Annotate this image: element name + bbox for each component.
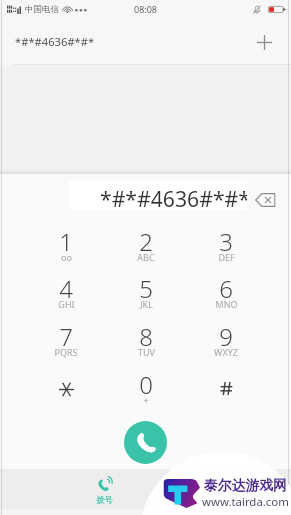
button[interactable]: 2 (106, 224, 186, 271)
button[interactable]: 拨号 (68, 469, 140, 509)
staticText: JKL (140, 298, 153, 310)
button[interactable]: 收藏 (212, 469, 284, 509)
staticText: 3 (219, 225, 233, 258)
staticText: 5 (139, 272, 153, 305)
staticText: 中国电信 (25, 4, 59, 15)
staticText: 08:08 (134, 3, 158, 15)
staticText: 8 (139, 320, 153, 353)
staticText: ABC (137, 251, 155, 263)
staticText: 7 (59, 320, 73, 353)
button[interactable]: 4 (26, 271, 106, 318)
staticText: 1 (59, 225, 73, 258)
button[interactable] (26, 367, 106, 414)
staticText: 4 (59, 272, 73, 305)
staticText: www.tairda.com (202, 494, 289, 510)
button[interactable]: 8 (106, 319, 186, 366)
button[interactable]: Call (124, 421, 167, 464)
staticText: 0 (139, 368, 153, 401)
staticText: PQRS (54, 346, 78, 358)
button[interactable]: Add (244, 22, 284, 62)
staticText: + (143, 394, 149, 406)
staticText: 泰尔达游戏网 (204, 477, 287, 494)
staticText: MNO (215, 298, 238, 310)
staticText: 收藏 (240, 495, 257, 506)
staticText: *#*#4636#*#* (15, 34, 95, 49)
button[interactable]: 9 (186, 319, 266, 366)
staticText: TUV (138, 346, 155, 358)
button[interactable]: 7 (26, 319, 106, 366)
staticText: 6 (219, 272, 233, 305)
button[interactable]: 6 (186, 271, 266, 318)
staticText: DEF (218, 251, 235, 263)
button[interactable]: 联系人 (140, 469, 212, 509)
staticText: oo (61, 251, 72, 263)
button[interactable] (186, 367, 266, 414)
button[interactable]: 3 (186, 224, 266, 271)
staticText: 2 (139, 225, 153, 258)
staticText: 联系人 (163, 495, 189, 506)
button[interactable]: 0 (106, 367, 186, 414)
button[interactable]: 5 (106, 271, 186, 318)
staticText: *#*#4636#*#* (100, 184, 247, 210)
staticText: GHI (58, 298, 75, 310)
button[interactable]: Backspace (251, 188, 279, 212)
staticText: WXYZ (214, 346, 238, 358)
staticText: 拨号 (96, 495, 113, 506)
staticText: 9 (219, 320, 233, 353)
button[interactable]: 1 (26, 224, 106, 271)
